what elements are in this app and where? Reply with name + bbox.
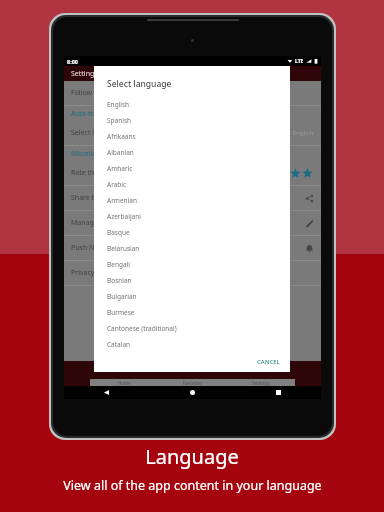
staticText: English: [107, 100, 130, 109]
other: Share: [305, 194, 314, 203]
button[interactable]: Bengali: [94, 256, 290, 272]
button[interactable]: Home: [90, 379, 159, 386]
staticText: Settings: [71, 69, 98, 79]
staticText: Auto-translate: [71, 109, 116, 118]
button[interactable]: CANCEL: [247, 354, 290, 370]
button[interactable]: Bulgarian: [94, 288, 290, 304]
button[interactable]: Select language: [64, 121, 321, 145]
button[interactable]: Push Notifications: [64, 236, 321, 260]
staticText: English: [293, 129, 314, 137]
staticText: View all of the app content in your lang…: [63, 477, 322, 494]
staticText: Bosnian: [107, 276, 132, 285]
staticText: Bengali: [107, 260, 130, 269]
staticText: Push Notifications: [71, 243, 131, 253]
button[interactable]: Armenian: [94, 192, 290, 208]
staticText: Arabic: [107, 180, 127, 189]
staticText: Catalan: [107, 340, 131, 349]
button[interactable]: Amharic: [94, 160, 290, 176]
button[interactable]: Basque: [94, 224, 290, 240]
other: Edit: [305, 219, 314, 228]
staticText: Basque: [107, 228, 130, 237]
button[interactable]: Rate this app: [64, 161, 321, 185]
staticText: Select language: [107, 78, 172, 90]
staticText: Armenian: [107, 196, 137, 205]
staticText: Privacy Policy: [71, 268, 116, 278]
button[interactable]: Azerbaijani: [94, 208, 290, 224]
staticText: Spanish: [107, 116, 132, 125]
button[interactable]: Albanian: [94, 144, 290, 160]
staticText: Home: [118, 380, 131, 386]
button[interactable]: Arabic: [94, 176, 290, 192]
staticText: Share this app: [71, 193, 118, 203]
staticText: Belarusian: [107, 244, 140, 253]
button[interactable]: Privacy Policy: [64, 261, 321, 285]
button[interactable]: English: [94, 96, 290, 112]
button[interactable]: Miscellaneous: [64, 146, 321, 161]
button[interactable]: Afrikaans: [94, 128, 290, 144]
staticText: Follow social media: [71, 88, 135, 98]
staticText: Select language: [71, 128, 124, 138]
staticText: Favorites: [183, 380, 203, 386]
button[interactable]: Catalan: [94, 336, 290, 352]
staticText: LTE: [295, 58, 304, 65]
button[interactable]: Manage Account: [64, 211, 321, 235]
button[interactable]: Burmese: [94, 304, 290, 320]
other: Notifications: [305, 244, 314, 253]
button[interactable]: Follow social media: [64, 81, 321, 105]
staticText: Miscellaneous: [71, 149, 116, 158]
staticText: Settings: [252, 380, 270, 386]
staticText: Burmese: [107, 308, 135, 317]
staticText: Cantonese (traditional): [107, 324, 177, 333]
staticText: Rate this app: [71, 168, 114, 178]
staticText: Afrikaans: [107, 132, 136, 141]
button[interactable]: Home: [149, 386, 235, 399]
staticText: Manage Account: [71, 218, 127, 228]
button[interactable]: Belarusian: [94, 240, 290, 256]
button[interactable]: Share this app: [64, 186, 321, 210]
staticText: CANCEL: [257, 358, 280, 366]
button[interactable]: Recents: [235, 386, 321, 399]
button[interactable]: Settings: [227, 379, 295, 386]
staticText: Albanian: [107, 148, 134, 157]
button[interactable]: Cantonese (traditional): [94, 320, 290, 336]
button[interactable]: Favorites: [159, 379, 227, 386]
button[interactable]: Auto-translate: [64, 106, 321, 121]
staticText: Bulgarian: [107, 292, 137, 301]
staticText: 8:00: [67, 58, 78, 65]
staticText: Azerbaijani: [107, 212, 141, 221]
staticText: Language: [145, 443, 239, 470]
staticText: Amharic: [107, 164, 133, 173]
button[interactable]: Bosnian: [94, 272, 290, 288]
button[interactable]: Back: [64, 386, 149, 399]
button[interactable]: Spanish: [94, 112, 290, 128]
